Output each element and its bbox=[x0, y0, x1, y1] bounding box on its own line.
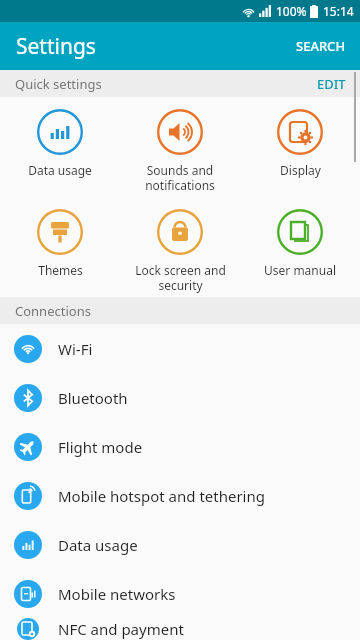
button[interactable]: Data usage bbox=[0, 520, 360, 569]
staticText: Mobile hotspot and tethering bbox=[58, 486, 265, 506]
button[interactable]: Sounds and notifications bbox=[120, 97, 240, 197]
staticText: EDIT bbox=[317, 75, 346, 93]
button[interactable]: NFC and payment bbox=[0, 618, 360, 640]
staticText: NFC and payment bbox=[58, 619, 184, 639]
staticText: Themes bbox=[38, 262, 83, 278]
staticText: Mobile networks bbox=[58, 584, 176, 604]
button[interactable]: Wi-Fi bbox=[0, 324, 360, 373]
button[interactable]: Flight mode bbox=[0, 422, 360, 471]
button[interactable]: SEARCH bbox=[282, 25, 360, 67]
staticText: Wi-Fi bbox=[58, 339, 93, 359]
button[interactable]: Bluetooth bbox=[0, 373, 360, 422]
button[interactable]: EDIT bbox=[303, 70, 360, 97]
staticText: User manual bbox=[264, 262, 336, 278]
staticText: Lock screen and security bbox=[135, 262, 226, 293]
button[interactable]: Mobile networks bbox=[0, 569, 360, 618]
staticText: Flight mode bbox=[58, 437, 143, 457]
staticText: Quick settings bbox=[15, 75, 102, 93]
staticText: 100% bbox=[276, 3, 307, 19]
staticText: Data usage bbox=[28, 162, 92, 178]
button[interactable]: Mobile hotspot and tethering bbox=[0, 471, 360, 520]
staticText: Bluetooth bbox=[58, 388, 128, 408]
button[interactable]: Display bbox=[240, 97, 360, 182]
staticText: Connections bbox=[15, 302, 91, 320]
staticText: 15:14 bbox=[323, 3, 354, 19]
staticText: Settings bbox=[16, 32, 96, 61]
staticText: Data usage bbox=[58, 535, 138, 555]
button[interactable]: Lock screen and security bbox=[120, 197, 240, 297]
staticText: SEARCH bbox=[296, 37, 346, 55]
button[interactable]: Themes bbox=[0, 197, 120, 282]
button[interactable]: Data usage bbox=[0, 97, 120, 182]
staticText: Sounds and notifications bbox=[145, 162, 215, 193]
button[interactable]: User manual bbox=[240, 197, 360, 282]
staticText: Display bbox=[280, 162, 321, 178]
